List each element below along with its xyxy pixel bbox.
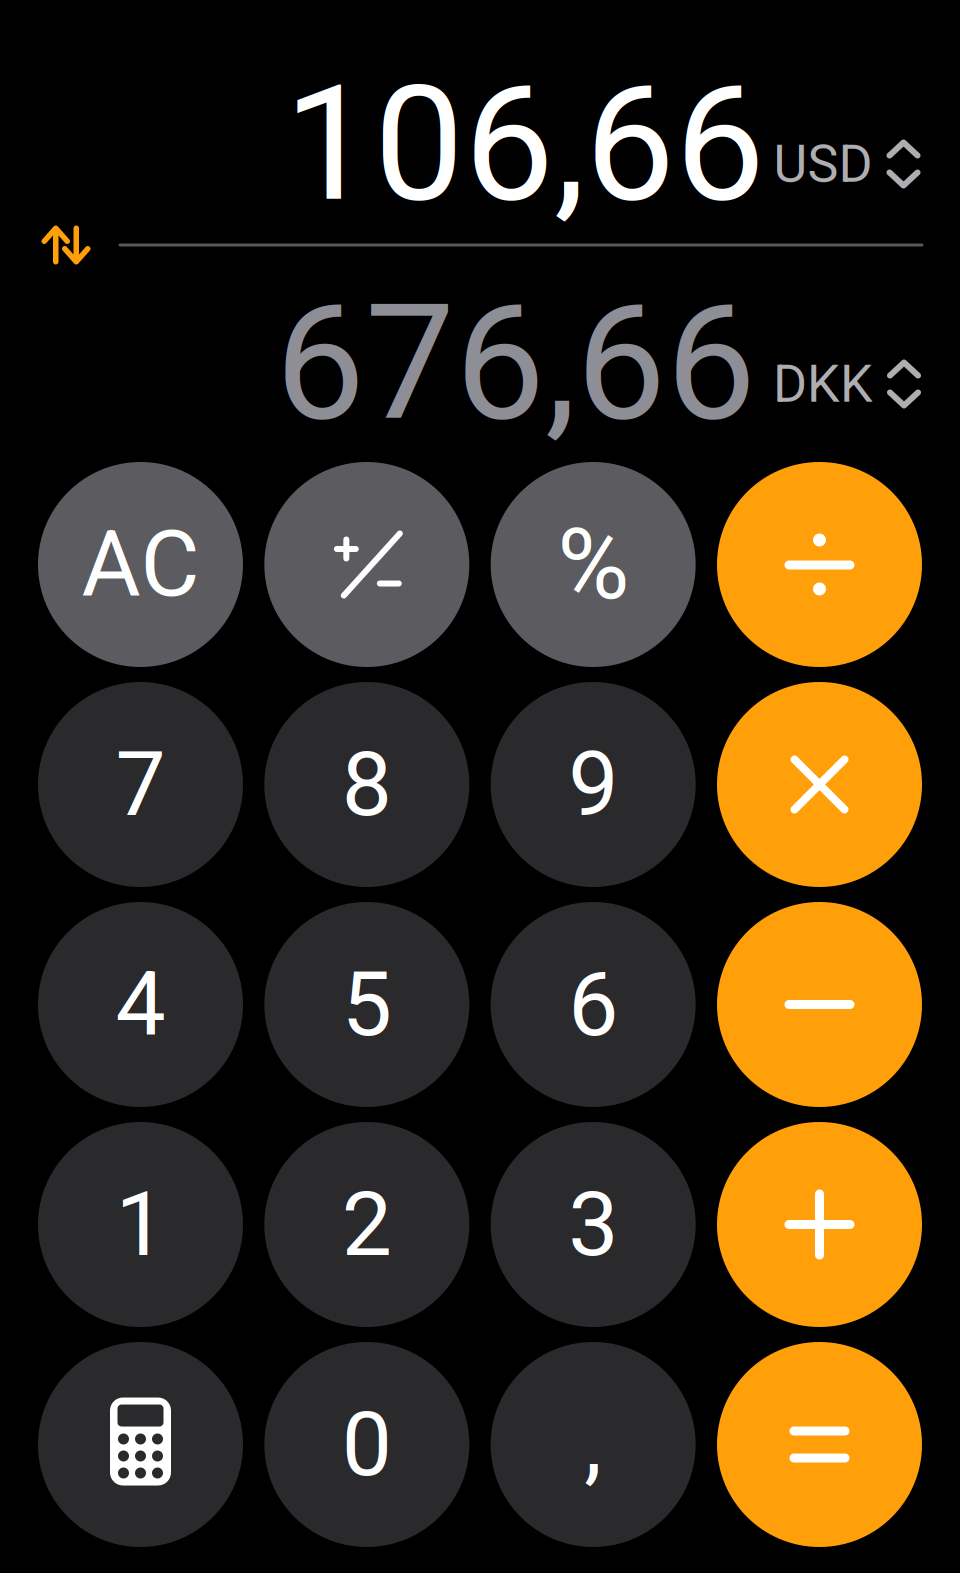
button[interactable]: 0 bbox=[264, 1342, 469, 1547]
button[interactable]: % bbox=[491, 462, 696, 667]
button[interactable]: AC bbox=[38, 462, 243, 667]
button[interactable]: Equals bbox=[717, 1342, 922, 1547]
button[interactable]: 8 bbox=[264, 682, 469, 887]
button[interactable]: 2 bbox=[264, 1122, 469, 1327]
button[interactable]: Converted amount, 676,66 bbox=[275, 269, 756, 457]
button[interactable]: Calculator bbox=[38, 1342, 243, 1547]
staticText: 676,66 bbox=[275, 269, 756, 457]
button[interactable]: 4 bbox=[38, 902, 243, 1107]
staticText: % bbox=[557, 507, 629, 622]
button[interactable]: Swap currencies bbox=[29, 208, 103, 282]
button[interactable]: Toggle sign bbox=[264, 462, 469, 667]
button[interactable]: 5 bbox=[264, 902, 469, 1107]
staticText: 4 bbox=[115, 952, 165, 1057]
button[interactable]: Danish kroner, change currency bbox=[767, 341, 927, 426]
staticText: 9 bbox=[568, 732, 618, 837]
button[interactable]: Source amount, 106,66 bbox=[284, 50, 765, 238]
staticText: 3 bbox=[568, 1172, 618, 1277]
staticText: 2 bbox=[342, 1172, 392, 1277]
staticText: USD bbox=[773, 133, 872, 194]
staticText: 5 bbox=[342, 952, 392, 1057]
button[interactable]: Multiply bbox=[717, 682, 922, 887]
button[interactable]: Add bbox=[717, 1122, 922, 1327]
staticText: , bbox=[584, 1391, 602, 1496]
button[interactable]: Divide bbox=[717, 462, 922, 667]
button[interactable]: 1 bbox=[38, 1122, 243, 1327]
staticText: 7 bbox=[115, 732, 165, 837]
button[interactable]: 9 bbox=[491, 682, 696, 887]
button[interactable]: Subtract bbox=[717, 902, 922, 1107]
button[interactable]: US dollars, change currency bbox=[767, 121, 926, 206]
staticText: AC bbox=[81, 511, 199, 618]
staticText: 106,66 bbox=[284, 50, 765, 238]
staticText: 1 bbox=[115, 1172, 165, 1277]
staticText: 8 bbox=[342, 732, 392, 837]
staticText: 6 bbox=[568, 952, 618, 1057]
button[interactable]: Decimal separator bbox=[491, 1342, 696, 1547]
button[interactable]: 7 bbox=[38, 682, 243, 887]
staticText: 0 bbox=[342, 1392, 392, 1497]
button[interactable]: 6 bbox=[491, 902, 696, 1107]
staticText: DKK bbox=[773, 353, 873, 414]
button[interactable]: 3 bbox=[491, 1122, 696, 1327]
